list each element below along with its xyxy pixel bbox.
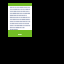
button[interactable]: OK [8, 30, 32, 37]
staticText: OK [18, 32, 22, 35]
